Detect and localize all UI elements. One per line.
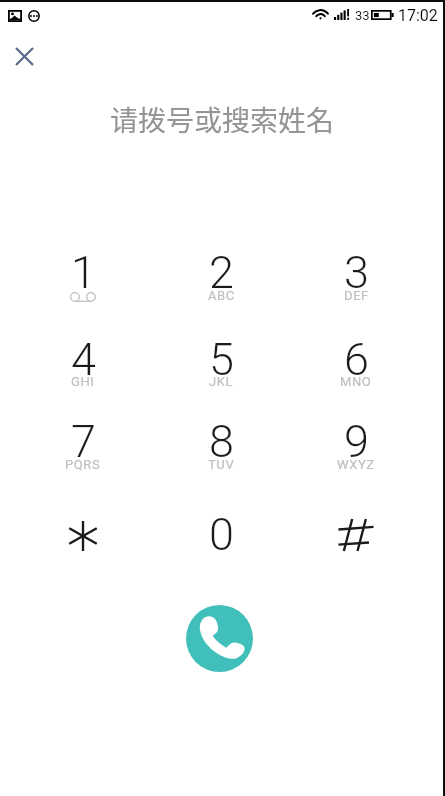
staticText: PQRS: [65, 457, 101, 472]
staticText: TUV: [208, 457, 235, 472]
staticText: 33: [355, 8, 370, 23]
button[interactable]: 4: [28, 325, 138, 397]
button[interactable]: 5: [166, 325, 276, 397]
staticText: DEF: [344, 288, 369, 303]
button[interactable]: 3: [301, 238, 411, 310]
staticText: WXYZ: [337, 457, 375, 472]
button[interactable]: 8: [166, 407, 276, 479]
staticText: 请拨号或搜索姓名: [110, 99, 335, 140]
staticText: JKL: [209, 374, 234, 389]
staticText: 9: [344, 415, 369, 468]
staticText: 2: [209, 246, 234, 299]
button[interactable]: 6: [301, 325, 411, 397]
staticText: 5: [209, 333, 234, 386]
staticText: GHI: [71, 374, 95, 389]
button[interactable]: [301, 500, 411, 572]
staticText: 1: [71, 246, 96, 299]
button[interactable]: Call: [186, 605, 253, 672]
staticText: 4: [71, 333, 96, 386]
staticText: 0: [209, 508, 234, 561]
staticText: 17:02: [398, 6, 438, 25]
button[interactable]: 7: [28, 407, 138, 479]
staticText: 3: [344, 246, 369, 299]
button[interactable]: 2: [166, 238, 276, 310]
button[interactable]: 1: [28, 238, 138, 310]
staticText: ABC: [208, 288, 235, 303]
button[interactable]: 0: [166, 500, 276, 572]
staticText: 6: [344, 333, 369, 386]
staticText: 8: [209, 415, 234, 468]
button[interactable]: 9: [301, 407, 411, 479]
button[interactable]: Close: [1, 33, 47, 79]
staticText: 7: [71, 415, 96, 468]
staticText: MNO: [340, 374, 372, 389]
button[interactable]: [28, 500, 138, 572]
